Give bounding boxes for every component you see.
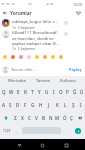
button[interactable]: H [37,98,45,111]
button[interactable]: E [15,85,22,98]
staticText: G [31,102,35,108]
button[interactable]: J [45,98,53,111]
button[interactable]: Shift [0,111,11,124]
button[interactable]: Emoji [9,53,17,61]
button[interactable]: Home [38,141,47,150]
button[interactable]: Emoji [1,53,9,61]
button[interactable]: Ö [61,111,68,124]
staticText: W [9,89,14,95]
button[interactable]: N [47,111,54,124]
staticText: B [42,115,46,121]
button[interactable]: Emoji [41,53,49,61]
button[interactable]: M [54,111,61,124]
staticText: f4load111 Bonudhosdf ve hazirdan, sbrdk … [12,30,60,46]
button[interactable]: Paylaş [68,65,83,74]
button[interactable]: Merhaba [7,76,27,85]
staticText: Kullanıcı [60,78,77,83]
staticText: R [24,89,27,95]
staticText: 10:28 [73,2,83,7]
button[interactable]: W [8,85,15,98]
staticText: ?123 [3,128,11,133]
staticText: V [35,115,38,121]
button[interactable]: I [50,85,57,98]
staticText: I [80,102,82,108]
staticText: T [31,89,34,95]
staticText: 5 beğenme [18,26,36,30]
staticText: . [65,128,67,133]
staticText: K [56,102,59,108]
staticText: E [17,89,20,95]
button[interactable]: F [21,98,29,111]
button[interactable]: Ş [69,98,77,111]
staticText: Yorumlar [10,10,32,17]
button[interactable]: Like [62,19,69,26]
button[interactable]: Kullanıcı [59,76,78,85]
staticText: Merhaba [8,78,26,83]
staticText: U [45,89,49,95]
button[interactable]: f4load111 Bonudhosdf ve hazirdan, sbrdk … [0,29,85,51]
button[interactable]: K [53,98,61,111]
staticText: , [16,128,18,133]
button[interactable]: R [22,85,29,98]
button[interactable]: U [43,85,50,98]
button[interactable]: Emoji [33,53,41,61]
staticText: D [16,102,20,108]
button[interactable]: I [77,98,85,111]
button[interactable]: O [57,85,64,98]
staticText: 1h [12,26,16,30]
button[interactable]: ?123 [0,124,13,137]
staticText: Ö [63,115,67,121]
staticText: O [59,89,63,95]
staticText: C [28,115,31,121]
button[interactable]: Tamam [35,76,52,85]
button[interactable]: D [14,98,21,111]
button[interactable]: S [7,98,14,111]
staticText: A [2,102,6,108]
staticText: I [53,89,55,95]
button[interactable]: Z [11,111,19,124]
button[interactable]: Like [62,30,69,37]
staticText: odtkaya_bugur hihe sdsmd [12,19,60,25]
staticText: Ü [80,89,84,95]
staticText: Paylaş [69,67,82,72]
staticText: 1h [12,47,16,51]
button[interactable]: A [0,98,7,111]
button[interactable]: Q [0,85,8,98]
staticText: H [39,102,43,108]
button[interactable]: B [40,111,47,124]
button[interactable]: Back [1,9,9,17]
button[interactable]: Ğ [71,85,78,98]
button[interactable]: P [64,85,71,98]
staticText: Tamam [36,78,51,83]
button[interactable]: T [29,85,36,98]
button[interactable]: C [26,111,33,124]
staticText: M [55,115,60,121]
button[interactable]: Share [74,9,83,18]
staticText: 5 beğenme [18,47,36,51]
button[interactable]: Back [15,141,24,150]
button[interactable]: Enter [75,128,81,134]
button[interactable]: Emoji [25,53,33,61]
button[interactable]: Y [36,85,43,98]
button[interactable]: Ç [68,111,75,124]
button[interactable]: Emoji [57,53,65,61]
staticText: L [64,102,67,108]
button[interactable]: X [19,111,26,124]
button[interactable]: Backspace [75,111,85,124]
button[interactable]: odtkaya_bugur hihe sdsmd [0,18,85,30]
button[interactable]: G [29,98,37,111]
staticText: Z [14,115,17,121]
button[interactable]: V [33,111,40,124]
button[interactable]: , [13,124,21,137]
staticText: Y [38,89,41,95]
button[interactable]: Ü [78,85,85,98]
staticText: Yorum ekle... [11,67,36,72]
button[interactable]: Emoji [49,53,57,61]
button[interactable]: L [61,98,69,111]
staticText: F [24,102,27,108]
button[interactable]: Recents [62,141,71,150]
button[interactable]: Emoji [17,53,25,61]
staticText: Ğ [73,89,77,95]
